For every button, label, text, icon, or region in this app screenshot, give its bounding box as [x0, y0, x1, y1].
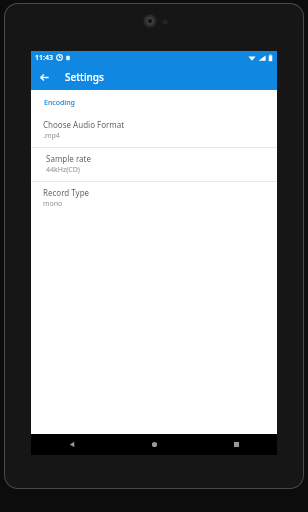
button[interactable]: Back [31, 434, 113, 455]
staticText: .mp4 [43, 131, 60, 141]
staticText: 11:43 [35, 53, 53, 63]
button[interactable]: Back [31, 64, 57, 90]
staticText: Settings [65, 70, 104, 84]
staticText: Encoding [44, 98, 75, 108]
staticText: Sample rate [46, 153, 91, 164]
staticText: Choose Audio Format [43, 119, 125, 130]
staticText: mono [43, 199, 63, 209]
button[interactable]: Recent apps [195, 434, 277, 455]
button[interactable]: Sample rate [31, 148, 277, 181]
button[interactable]: Home [113, 434, 195, 455]
staticText: Record Type [43, 187, 90, 198]
button[interactable]: Record Type [31, 182, 277, 215]
staticText: 44kHz(CD) [46, 165, 80, 175]
button[interactable]: Choose Audio Format [31, 114, 277, 147]
